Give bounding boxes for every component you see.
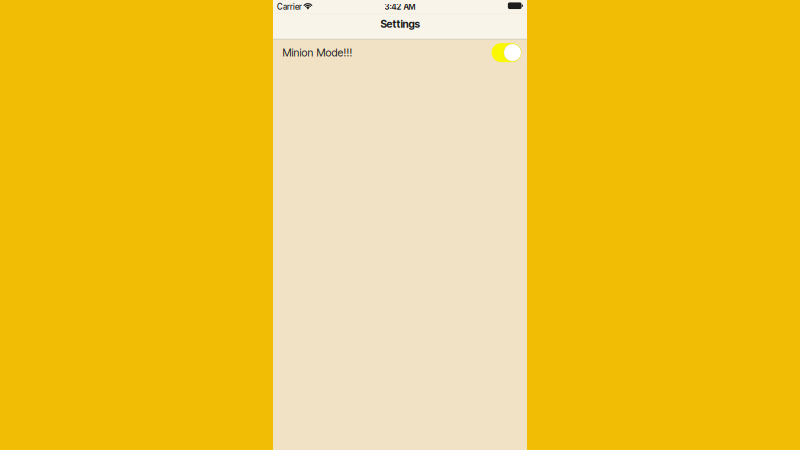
button[interactable]: Minion Mode!!!	[273, 39, 527, 66]
staticText: 3:42 AM	[384, 2, 415, 12]
staticText: Carrier	[277, 2, 302, 12]
staticText: Minion Mode!!!	[282, 46, 352, 59]
button[interactable]: Minion Mode, on	[491, 43, 521, 62]
staticText: Settings	[380, 18, 419, 30]
